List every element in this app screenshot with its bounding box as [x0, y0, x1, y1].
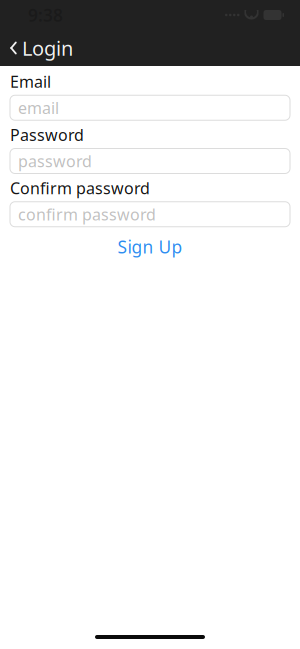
button[interactable]: password: [10, 148, 290, 173]
staticText: Login: [22, 35, 73, 61]
staticText: Email: [10, 71, 51, 92]
staticText: Confirm password: [10, 177, 150, 199]
staticText: password: [18, 150, 92, 172]
staticText: confirm password: [18, 204, 156, 225]
button[interactable]: confirm password: [10, 202, 290, 227]
staticText: Sign Up: [117, 235, 182, 258]
button[interactable]: Sign Up: [10, 234, 290, 260]
button[interactable]: Login: [0, 30, 83, 66]
staticText: Password: [10, 124, 84, 145]
button[interactable]: email: [10, 95, 290, 120]
staticText: email: [18, 97, 59, 118]
